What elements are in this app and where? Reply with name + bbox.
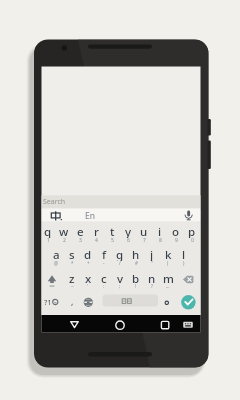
button[interactable]: e [72,224,88,238]
button[interactable]: y [120,224,136,238]
staticText: q [44,224,52,238]
button[interactable] [79,291,95,314]
staticText: t [110,224,115,238]
staticText: h [132,247,140,261]
staticText: u [140,224,148,238]
staticText: ( [167,260,169,266]
button[interactable]: d [80,247,96,261]
staticText: v [117,271,124,285]
button[interactable]: z [64,271,80,285]
staticText: 7 [143,237,146,244]
staticText: c [101,271,107,285]
staticText: f [102,247,107,261]
staticText: + [87,260,90,266]
staticText: - [103,260,105,266]
button[interactable]: En [80,209,100,222]
staticText: # [135,260,138,266]
staticText: d [84,247,92,261]
staticText: y [125,224,132,238]
staticText: 0 [191,237,194,244]
button[interactable]: t [104,224,120,238]
button[interactable]: o [168,224,184,238]
staticText: @ [54,260,59,266]
button[interactable]: v [112,271,128,285]
staticText: a [53,247,60,261]
staticText: l [182,247,186,261]
button[interactable]: g [112,247,128,261]
staticText: s [69,247,75,261]
staticText: ; [119,283,121,289]
staticText: En [85,210,95,222]
staticText: j [150,247,154,261]
staticText: ' [87,283,89,289]
button[interactable] [103,295,158,306]
button[interactable]: c [96,271,112,285]
button[interactable]: j [144,247,160,261]
button[interactable]: Search [43,195,103,208]
button[interactable]: i [152,224,168,238]
button[interactable] [46,209,66,222]
button[interactable] [181,294,197,310]
button[interactable]: w [56,224,72,238]
button[interactable] [179,315,198,332]
button[interactable]: m [160,271,176,285]
staticText: b [132,271,140,285]
staticText: z [69,271,75,285]
staticText: p [188,224,196,238]
staticText: 8 [159,237,162,244]
staticText: * [71,260,74,266]
button[interactable]: b [128,271,144,285]
button[interactable]: x [80,271,96,285]
button[interactable]: q [40,224,56,238]
button[interactable] [179,209,199,222]
button[interactable] [64,315,85,332]
button[interactable]: p [184,224,200,238]
staticText: Search [43,197,66,207]
staticText: : [103,283,105,289]
staticText: w [59,224,69,238]
staticText: i [158,224,162,238]
button[interactable]: , [66,294,78,308]
button[interactable]: s [64,247,80,261]
button[interactable]: ?1 [41,295,55,309]
button[interactable]: u [136,224,152,238]
button[interactable] [155,315,176,332]
staticText: ? [151,283,153,289]
staticText: m [163,271,174,285]
staticText: … [166,283,170,289]
button[interactable] [180,268,201,291]
button[interactable]: a [48,247,64,261]
button[interactable]: h [128,247,144,261]
staticText: 9 [175,237,178,244]
button[interactable] [110,315,131,332]
staticText: " [151,260,153,266]
staticText: 3 [79,237,82,244]
staticText: ) [183,260,185,266]
staticText: 2 [63,237,66,244]
button[interactable]: f [96,247,112,261]
staticText: ! [135,283,137,289]
staticText: ~ [71,283,74,289]
staticText: 1 [47,237,50,244]
button[interactable]: r [88,224,104,238]
staticText: x [85,271,92,285]
button[interactable] [159,291,175,314]
staticText: 6 [127,237,130,244]
staticText: 5 [111,237,114,244]
staticText: r [94,224,99,238]
staticText: e [77,224,84,238]
staticText: 4 [95,237,98,244]
button[interactable]: n [144,271,160,285]
staticText: / [119,260,121,266]
staticText: k [165,247,172,261]
button[interactable] [42,268,62,291]
staticText: o [172,224,180,238]
button[interactable]: l [176,247,192,261]
staticText: , [71,295,74,307]
staticText: n [148,271,156,285]
button[interactable]: k [160,247,176,261]
staticText: g [116,247,124,261]
staticText: ?1 [44,297,52,307]
